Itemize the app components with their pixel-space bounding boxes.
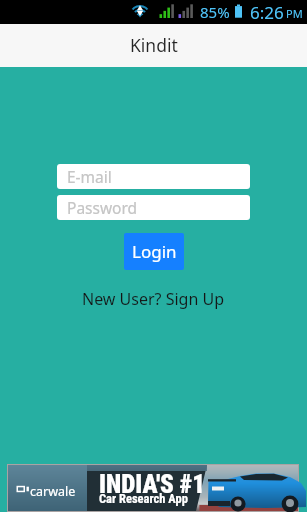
- button[interactable]: Password: [57, 195, 250, 220]
- staticText: PM: [286, 6, 303, 21]
- button[interactable]: Login: [124, 233, 184, 270]
- staticText: Password: [67, 197, 138, 218]
- button[interactable]: carwale: [8, 465, 298, 511]
- staticText: Kindit: [130, 33, 178, 57]
- staticText: New User? Sign Up: [82, 288, 225, 310]
- staticText: 85%: [200, 2, 230, 22]
- staticText: 6:26: [250, 1, 284, 24]
- staticText: Login: [132, 240, 177, 263]
- button[interactable]: New User? Sign Up: [82, 288, 225, 310]
- staticText: E-mail: [67, 166, 112, 187]
- staticText: Car Research App: [99, 491, 188, 506]
- staticText: INDIA'S #1: [99, 470, 206, 499]
- staticText: carwale: [30, 483, 76, 500]
- button[interactable]: E-mail: [57, 164, 250, 189]
